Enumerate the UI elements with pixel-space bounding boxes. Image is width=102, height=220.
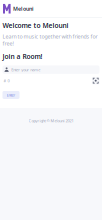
staticText: Welcome to Melouni xyxy=(2,21,68,30)
staticText: Join a Room! xyxy=(2,52,42,61)
staticText: Learn to music together with friends for… xyxy=(2,33,97,47)
staticText: Enter xyxy=(6,92,15,98)
staticText: Melouni xyxy=(13,5,34,12)
button[interactable]: Enter xyxy=(2,91,19,99)
button[interactable]: Scan room code xyxy=(92,77,99,84)
staticText: Enter your name xyxy=(11,67,40,72)
staticText: Copyright © Melouni 2021 xyxy=(28,118,73,123)
button[interactable]: Melouni home xyxy=(0,0,102,17)
staticText: # 0 xyxy=(3,78,9,83)
